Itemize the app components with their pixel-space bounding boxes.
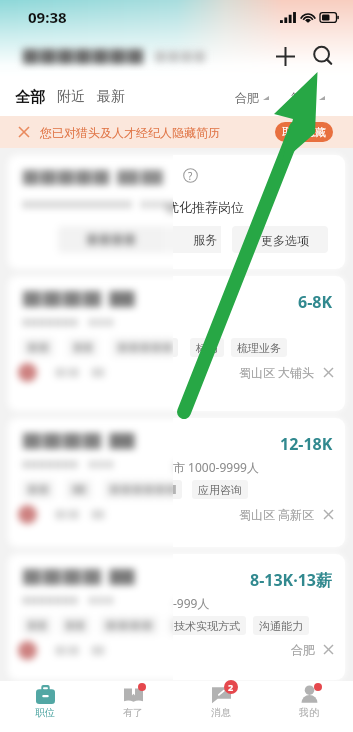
button[interactable]: Help <box>182 167 199 184</box>
staticText: 应用咨询 <box>198 483 242 497</box>
button[interactable]: 服务 <box>163 226 221 253</box>
staticText: 沟通能力 <box>259 619 303 633</box>
button[interactable]: 有了 <box>89 681 177 732</box>
staticText: 服务 <box>193 232 217 247</box>
staticText: 最新 <box>97 88 125 106</box>
staticText: 技术实现方式 <box>174 619 240 633</box>
button[interactable]: Search <box>309 42 337 70</box>
button[interactable]: 最新 <box>97 88 125 106</box>
staticText: 合肥 <box>291 642 315 657</box>
staticText: 09:38 <box>28 7 67 27</box>
staticText: 优化推荐岗位 <box>166 199 244 215</box>
button[interactable]: + 更多选项 <box>232 226 328 253</box>
staticText: 8-13K·13薪 <box>250 569 333 591</box>
staticText: 附近 <box>57 88 85 106</box>
staticText: 梳理业务 <box>237 341 281 355</box>
button[interactable]: + 更多选项 <box>232 226 328 253</box>
staticText: 蜀山区 大铺头 <box>239 364 315 380</box>
staticText: ? <box>188 169 193 183</box>
button[interactable]: 8-13K·13薪 <box>8 554 345 680</box>
staticText: 您已对猎头及人才经纪人隐藏简历 <box>40 125 220 140</box>
button[interactable]: 服务 <box>173 226 221 253</box>
staticText: 消息 <box>211 706 231 719</box>
button[interactable]: Add <box>271 42 299 70</box>
staticText: 我的 <box>299 706 319 719</box>
button[interactable]: 全部 <box>15 88 45 107</box>
staticText: 6-8K <box>298 291 333 313</box>
staticText: 应用咨询 <box>198 483 242 497</box>
staticText: 有了 <box>123 706 143 719</box>
staticText: -999人 <box>173 595 210 611</box>
staticText: 合肥 <box>291 642 315 657</box>
button[interactable]: 取消隐藏 <box>275 122 333 142</box>
button[interactable]: 职位 <box>0 681 89 732</box>
staticText: 标书 <box>196 341 218 355</box>
staticText: 12-18K <box>280 433 333 455</box>
staticText: 市 1000-9999人 <box>173 459 259 475</box>
staticText: 技术实现方式 <box>174 619 240 633</box>
staticText: 8-13K·13薪 <box>250 569 333 591</box>
staticText: 筛选 <box>291 90 315 105</box>
button[interactable]: 6-8K <box>173 276 345 411</box>
button[interactable]: 合肥 <box>229 88 275 107</box>
staticText: 服务 <box>193 232 217 247</box>
staticText: + 更多选项 <box>251 232 309 248</box>
button[interactable]: 我的 <box>265 681 353 732</box>
staticText: ? <box>188 169 193 183</box>
button[interactable]: 12-18K <box>173 418 345 547</box>
staticText: 蜀山区 大铺头 <box>239 364 315 380</box>
staticText: 梳理业务 <box>237 341 281 355</box>
button[interactable]: 附近 <box>57 88 85 106</box>
staticText: 全部 <box>15 88 45 107</box>
staticText: 2 <box>228 681 234 693</box>
staticText: 合肥 <box>235 90 259 105</box>
staticText: 标书 <box>196 341 218 355</box>
button[interactable]: 6-8K <box>8 276 345 411</box>
staticText: 6-8K <box>298 291 333 313</box>
staticText: 蜀山区 高新区 <box>239 506 315 522</box>
button[interactable]: 筛选 <box>284 88 332 107</box>
button[interactable]: 2 <box>177 681 265 732</box>
staticText: -999人 <box>173 595 210 611</box>
staticText: 沟通能力 <box>259 619 303 633</box>
button[interactable]: Close <box>17 125 31 139</box>
staticText: 优化推荐岗位 <box>173 199 244 215</box>
staticText: 取消隐藏 <box>282 125 326 139</box>
staticText: + 更多选项 <box>251 232 309 248</box>
staticText: 12-18K <box>280 433 333 455</box>
staticText: 市 1000-9999人 <box>173 459 259 475</box>
staticText: 蜀山区 高新区 <box>239 506 315 522</box>
button[interactable]: 12-18K <box>8 418 345 547</box>
staticText: 职位 <box>35 706 55 719</box>
button[interactable]: Help <box>182 167 199 184</box>
button[interactable]: 8-13K·13薪 <box>173 554 345 680</box>
